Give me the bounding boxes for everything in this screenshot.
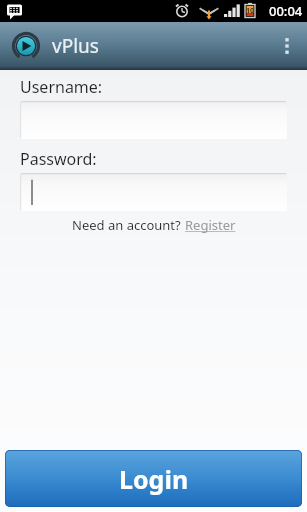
staticText: Register bbox=[185, 216, 236, 234]
button[interactable]: Register bbox=[185, 216, 236, 234]
staticText: Password: bbox=[20, 148, 97, 170]
staticText: Need an account? bbox=[72, 216, 185, 234]
staticText: 10 bbox=[246, 6, 255, 16]
button[interactable] bbox=[20, 101, 287, 139]
staticText: 00:04 bbox=[269, 2, 303, 20]
staticText: Username: bbox=[20, 76, 103, 98]
button[interactable]: Login bbox=[5, 450, 302, 507]
staticText: vPlus bbox=[52, 33, 99, 59]
button[interactable] bbox=[20, 173, 287, 211]
staticText: Login bbox=[119, 462, 189, 496]
button[interactable]: More options bbox=[267, 22, 307, 70]
